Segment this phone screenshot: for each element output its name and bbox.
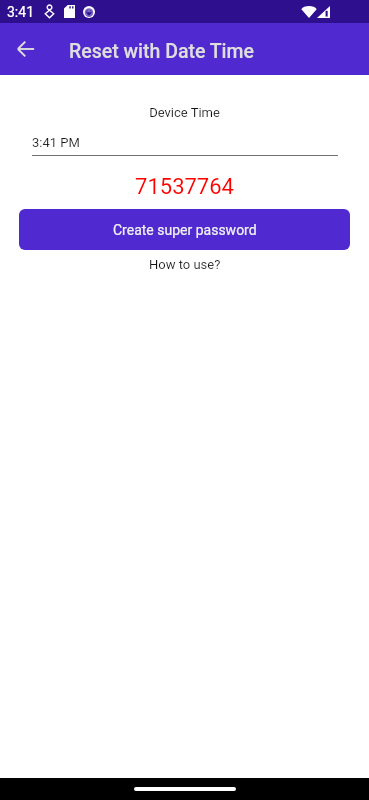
button[interactable]: Create super password — [19, 209, 350, 250]
button[interactable]: Navigate up — [9, 32, 43, 66]
staticText: Device Time — [0, 105, 369, 120]
staticText: Reset with Date Time — [69, 40, 255, 63]
staticText: 71537764 — [0, 174, 369, 200]
button[interactable]: 3:41 PM — [32, 128, 338, 156]
button[interactable]: How to use? — [134, 253, 236, 275]
staticText: Create super password — [113, 222, 257, 238]
staticText: 3:41 PM — [32, 135, 80, 150]
staticText: How to use? — [149, 257, 221, 272]
staticText: 3:41 — [7, 4, 34, 20]
